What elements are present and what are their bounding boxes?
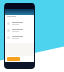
button[interactable] [5, 27, 34, 34]
button[interactable] [5, 20, 34, 27]
button[interactable] [5, 34, 34, 41]
button[interactable] [7, 57, 20, 61]
